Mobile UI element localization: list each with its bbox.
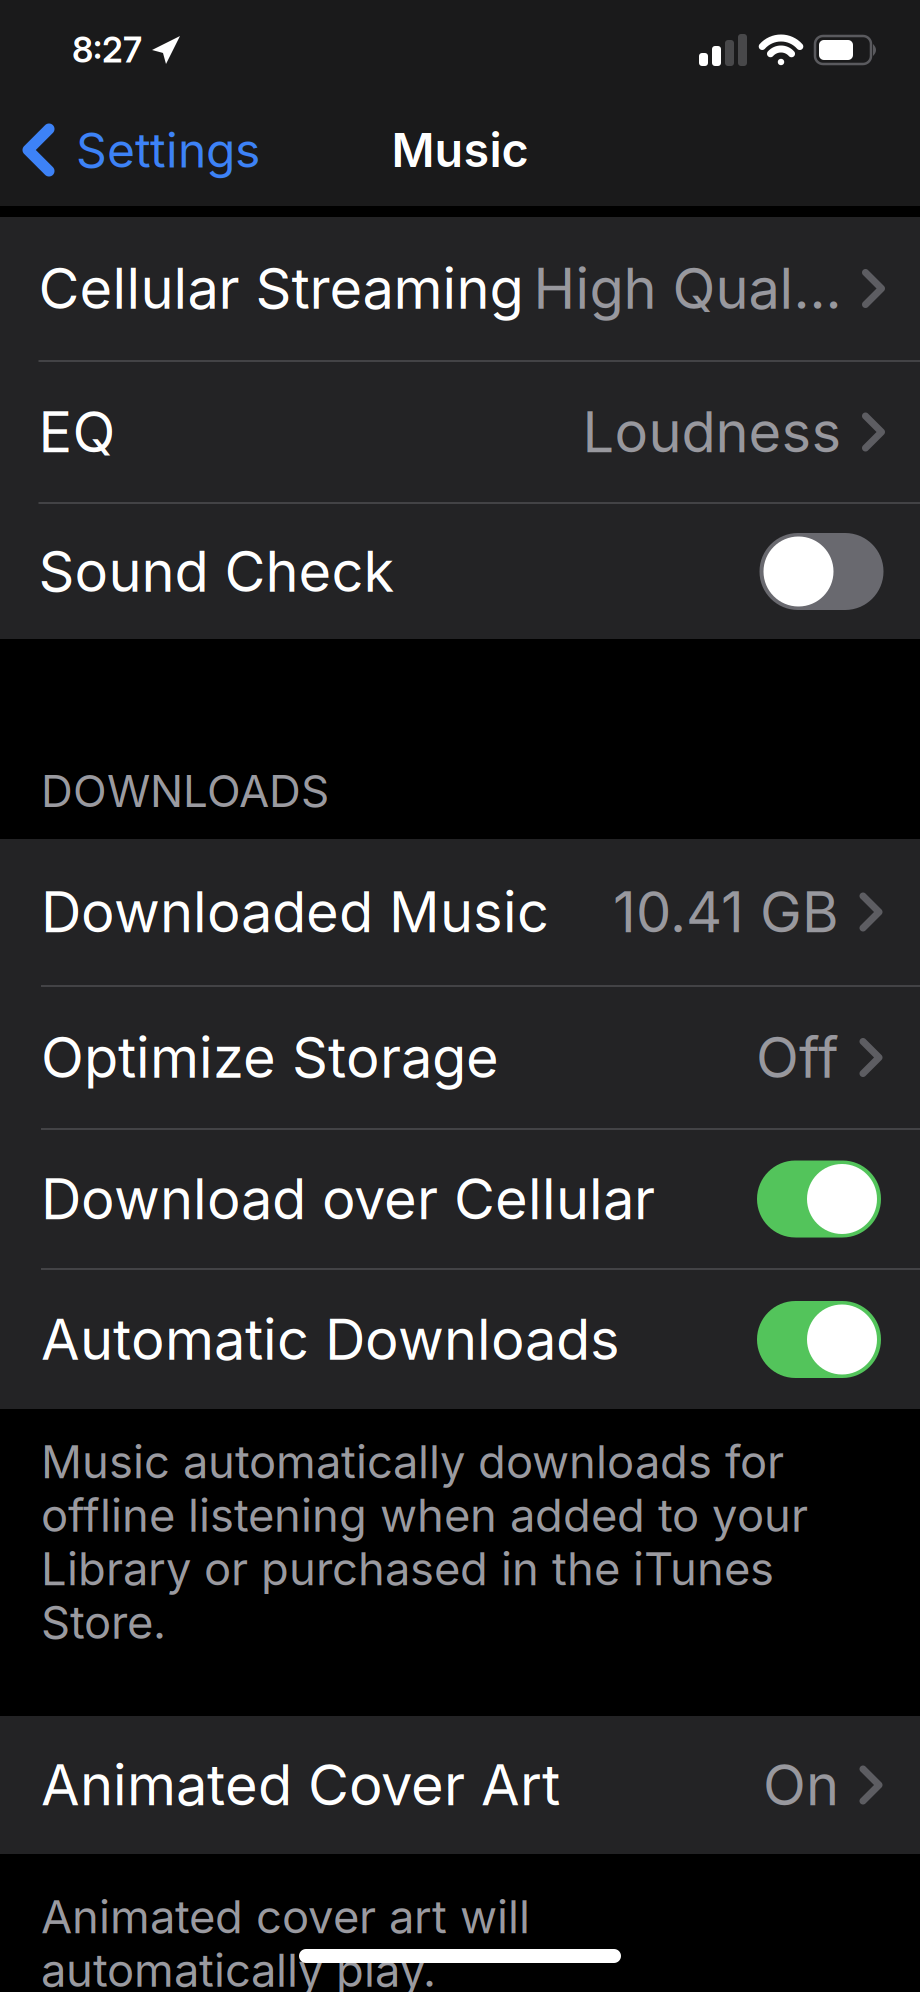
button[interactable]: Back to Settings xyxy=(22,122,260,178)
staticText: Download over Cellular xyxy=(41,1166,655,1232)
staticText: Sound Check xyxy=(38,538,394,605)
staticText: EQ xyxy=(38,399,115,465)
staticText: 10.41 GB xyxy=(613,879,839,945)
staticText: DOWNLOADS xyxy=(41,765,329,817)
button[interactable]: Cellular Streaming xyxy=(0,217,920,360)
button[interactable]: Animated Cover Art xyxy=(0,1716,920,1854)
button[interactable]: Downloaded Music xyxy=(0,839,920,985)
staticText: Animated Cover Art xyxy=(41,1752,560,1818)
staticText: 8:27 xyxy=(72,30,142,70)
button[interactable]: EQ xyxy=(0,362,920,502)
staticText: Off xyxy=(756,1024,839,1091)
button[interactable]: Download over Cellular xyxy=(0,1130,920,1268)
staticText: Music automatically downloads for offlin… xyxy=(41,1435,808,1649)
button[interactable]: Sound Check xyxy=(0,504,920,639)
staticText: Animated cover art will automatically pl… xyxy=(41,1890,530,1992)
staticText: Optimize Storage xyxy=(41,1024,499,1091)
staticText: Automatic Downloads xyxy=(41,1306,620,1373)
staticText: Music xyxy=(391,122,528,178)
button[interactable]: Optimize Storage xyxy=(0,987,920,1128)
staticText: Settings xyxy=(76,122,260,178)
staticText: Downloaded Music xyxy=(41,879,549,945)
staticText: On xyxy=(763,1752,839,1818)
staticText: High Qual... xyxy=(533,255,841,322)
button[interactable]: Automatic Downloads xyxy=(0,1270,920,1409)
staticText: Cellular Streaming xyxy=(38,255,523,322)
staticText: Loudness xyxy=(582,399,841,465)
